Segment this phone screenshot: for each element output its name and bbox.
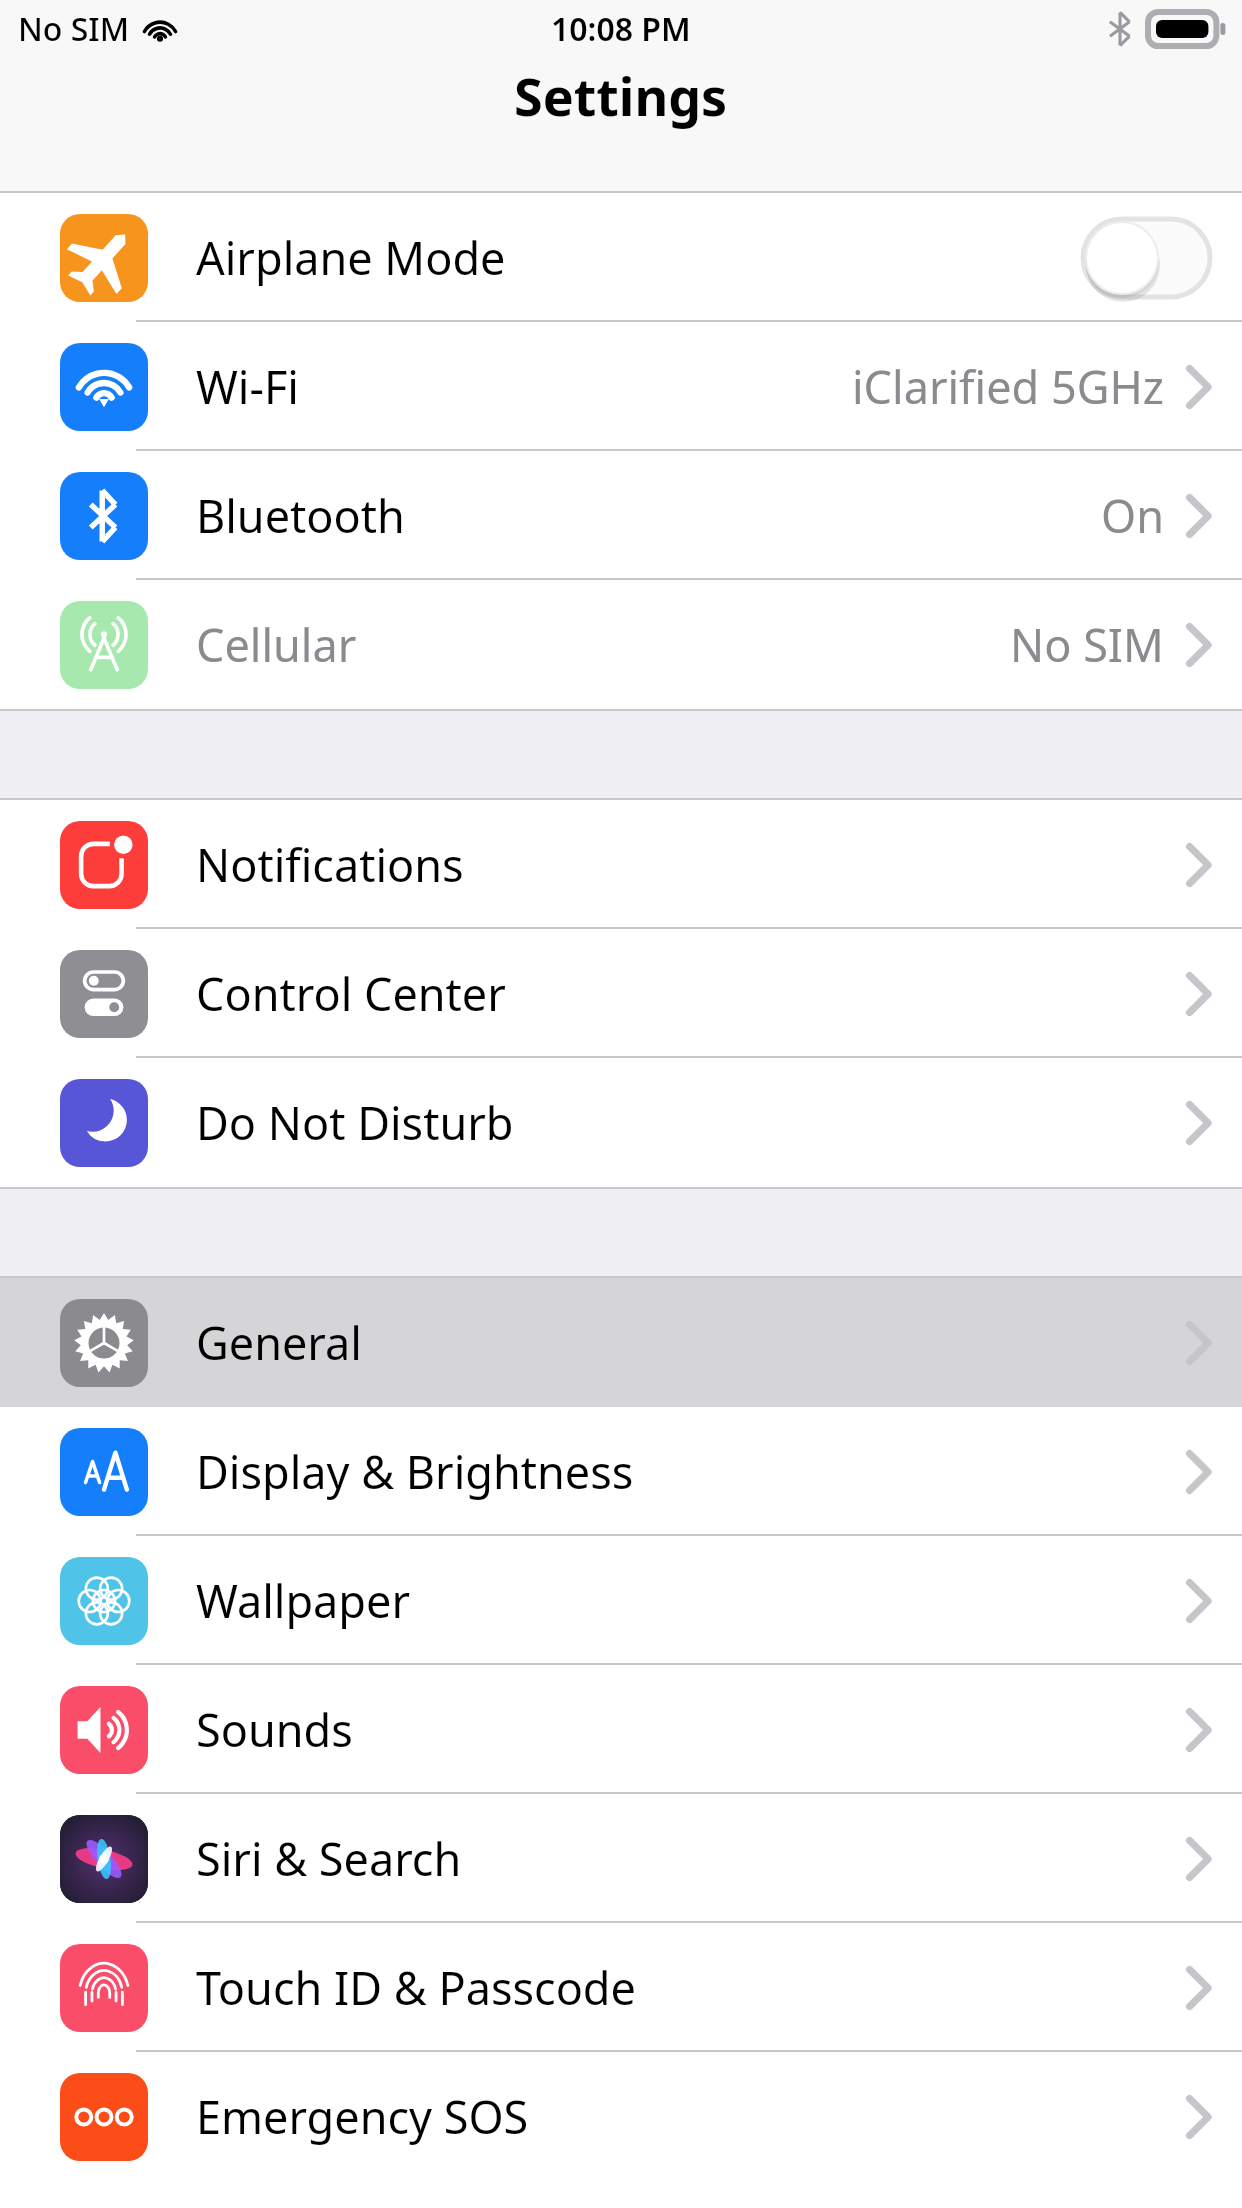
staticText: Notifications xyxy=(196,834,464,895)
staticText: Settings xyxy=(514,60,728,131)
staticText: 10:08 PM xyxy=(551,7,691,51)
staticText: iClarified 5GHz xyxy=(852,356,1164,417)
button[interactable]: Emergency SOS xyxy=(0,2052,1242,2181)
button[interactable]: Display & Brightness xyxy=(0,1407,1242,1536)
button[interactable]: Wi-Fi xyxy=(0,322,1242,451)
button[interactable]: Siri & Search xyxy=(0,1794,1242,1923)
button[interactable]: Airplane Mode toggle xyxy=(1083,219,1210,297)
staticText: Siri & Search xyxy=(196,1828,462,1889)
staticText: Sounds xyxy=(196,1699,353,1760)
button[interactable]: Wallpaper xyxy=(0,1536,1242,1665)
button[interactable]: Touch ID & Passcode xyxy=(0,1923,1242,2052)
staticText: Bluetooth xyxy=(196,485,405,546)
button[interactable]: Airplane Mode xyxy=(0,193,1242,322)
staticText: Airplane Mode xyxy=(196,227,506,288)
staticText: Do Not Disturb xyxy=(196,1092,514,1153)
button[interactable]: Notifications xyxy=(0,800,1242,929)
button[interactable]: Cellular xyxy=(0,580,1242,709)
button[interactable]: General xyxy=(0,1278,1242,1407)
button[interactable]: Sounds xyxy=(0,1665,1242,1794)
staticText: On xyxy=(1101,485,1164,546)
button[interactable]: Bluetooth xyxy=(0,451,1242,580)
staticText: Display & Brightness xyxy=(196,1441,634,1502)
staticText: Wi-Fi xyxy=(196,356,299,417)
button[interactable]: Do Not Disturb xyxy=(0,1058,1242,1187)
staticText: Emergency SOS xyxy=(196,2086,529,2147)
staticText: No SIM xyxy=(18,7,130,51)
staticText: Touch ID & Passcode xyxy=(196,1957,636,2018)
staticText: Control Center xyxy=(196,963,506,1024)
staticText: No SIM xyxy=(1010,614,1164,675)
staticText: General xyxy=(196,1312,362,1373)
staticText: Wallpaper xyxy=(196,1570,410,1631)
staticText: Cellular xyxy=(196,614,357,675)
button[interactable]: Control Center xyxy=(0,929,1242,1058)
